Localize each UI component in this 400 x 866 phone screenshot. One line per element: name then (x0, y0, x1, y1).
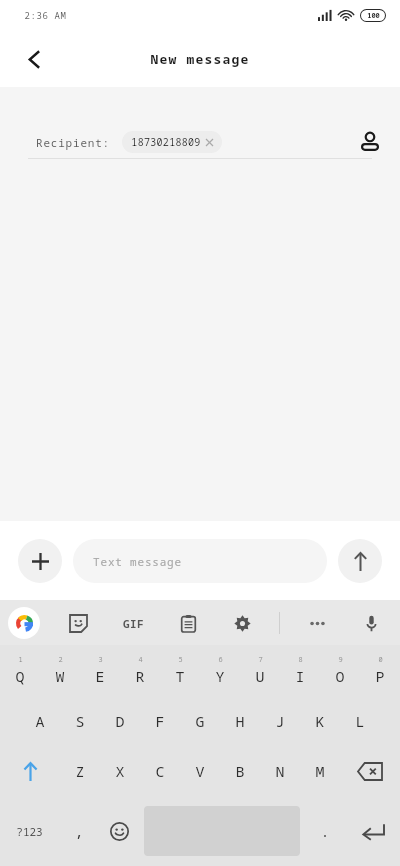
button[interactable]: Back (12, 37, 56, 81)
button[interactable]: GIF (116, 606, 150, 640)
staticText: 3 (98, 655, 103, 665)
button[interactable]: Text message (73, 539, 327, 583)
button[interactable]: 7 (240, 645, 280, 696)
button[interactable]: S (60, 696, 100, 746)
button[interactable]: 0 (360, 645, 400, 696)
staticText: Z (75, 761, 85, 781)
staticText: L (355, 711, 365, 731)
staticText: Q (15, 666, 25, 686)
button[interactable]: 6 (200, 645, 240, 696)
staticText: 6 (218, 655, 223, 665)
button[interactable]: A (20, 696, 60, 746)
button[interactable]: 4 (120, 645, 160, 696)
button[interactable]: K (300, 696, 340, 746)
button[interactable]: ?123 (0, 796, 59, 866)
button[interactable]: 5 (160, 645, 200, 696)
staticText: , (74, 821, 84, 841)
button[interactable]: Clipboard (171, 606, 205, 640)
button[interactable]: G (180, 696, 220, 746)
button[interactable]: Choose contact (348, 125, 392, 159)
button[interactable]: More options (300, 606, 334, 640)
button[interactable]: Emoji (99, 796, 139, 866)
button[interactable]: Send (338, 539, 382, 583)
staticText: 8 (298, 655, 303, 665)
button[interactable]: L (340, 696, 380, 746)
staticText: 0 (378, 655, 383, 665)
staticText: 1 (18, 655, 23, 665)
staticText: V (195, 761, 205, 781)
button[interactable]: 2 (40, 645, 80, 696)
button[interactable]: J (260, 696, 300, 746)
staticText: W (55, 666, 65, 686)
button[interactable]: M (300, 746, 340, 796)
staticText: M (315, 761, 325, 781)
staticText: . (320, 821, 330, 841)
button[interactable]: Keyboard settings (225, 606, 259, 640)
staticText: K (315, 711, 325, 731)
staticText: 7 (258, 655, 263, 665)
staticText: J (275, 711, 285, 731)
button[interactable]: Google search (8, 607, 40, 639)
staticText: G (195, 711, 205, 731)
staticText: I (295, 666, 305, 686)
button[interactable]: . (305, 796, 345, 866)
staticText: A (35, 711, 45, 731)
staticText: New message (150, 50, 250, 68)
staticText: E (95, 666, 105, 686)
button[interactable]: Backspace (340, 746, 400, 796)
button[interactable]: F (140, 696, 180, 746)
staticText: 2 (58, 655, 63, 665)
button[interactable]: 18730218809 (122, 131, 222, 153)
button[interactable]: Add attachment (18, 539, 62, 583)
button[interactable]: H (220, 696, 260, 746)
staticText: H (235, 711, 245, 731)
staticText: T (175, 666, 185, 686)
staticText: Y (215, 666, 225, 686)
staticText: N (275, 761, 285, 781)
staticText: 100 (367, 11, 380, 21)
staticText: S (75, 711, 85, 731)
button[interactable]: X (100, 746, 140, 796)
staticText: Recipient: (36, 135, 110, 150)
button[interactable]: B (220, 746, 260, 796)
staticText: D (115, 711, 125, 731)
staticText: C (155, 761, 165, 781)
button[interactable]: 8 (280, 645, 320, 696)
button[interactable]: 1 (0, 645, 40, 696)
staticText: B (235, 761, 245, 781)
button[interactable]: N (260, 746, 300, 796)
staticText: 9 (338, 655, 343, 665)
staticText: GIF (123, 616, 144, 631)
staticText: R (135, 666, 145, 686)
staticText: F (155, 711, 165, 731)
button[interactable]: 9 (320, 645, 360, 696)
staticText: P (375, 666, 385, 686)
staticText: 2:36 AM (24, 9, 67, 21)
button[interactable]: Enter (345, 796, 400, 866)
button[interactable]: V (180, 746, 220, 796)
button[interactable]: , (59, 796, 99, 866)
staticText: O (335, 666, 345, 686)
button[interactable]: D (100, 696, 140, 746)
button[interactable]: Shift (0, 746, 60, 796)
staticText: 5 (178, 655, 183, 665)
button[interactable]: Z (60, 746, 100, 796)
staticText: X (115, 761, 125, 781)
button[interactable]: 3 (80, 645, 120, 696)
staticText: U (255, 666, 265, 686)
staticText: 18730218809 (131, 135, 201, 149)
staticText: ?123 (16, 824, 43, 839)
staticText: Text message (93, 554, 182, 569)
staticText: 4 (138, 655, 143, 665)
button[interactable]: Stickers (61, 606, 95, 640)
button[interactable]: C (140, 746, 180, 796)
button[interactable]: Voice input (354, 606, 388, 640)
